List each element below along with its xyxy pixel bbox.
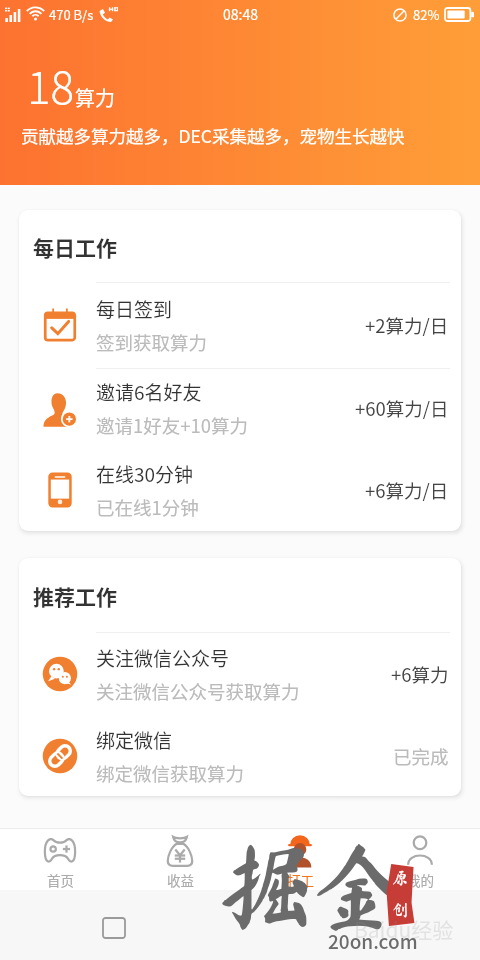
staticText: 绑定微信获取算力 xyxy=(96,760,245,787)
staticText: 邀请1好友+10算力 xyxy=(96,412,249,439)
staticText: 打工 xyxy=(287,870,314,890)
staticText: 推荐工作 xyxy=(33,581,117,611)
staticText: +6算力 xyxy=(391,661,449,688)
staticText: 首页 xyxy=(47,870,74,890)
button[interactable]: 收益 xyxy=(120,828,240,890)
staticText: 18 xyxy=(27,53,75,117)
staticText: 收益 xyxy=(167,870,194,890)
staticText: 每日工作 xyxy=(33,232,117,262)
staticText: 已完成 xyxy=(393,743,449,770)
button[interactable]: Home xyxy=(103,918,125,938)
staticText: +60算力/日 xyxy=(355,395,449,422)
staticText: 贡献越多算力越多，DEC采集越多，宠物生长越快 xyxy=(21,123,405,148)
staticText: 82% xyxy=(413,5,440,24)
staticText: 20on.com xyxy=(328,927,418,955)
staticText: 创 xyxy=(392,902,409,918)
button[interactable]: 邀请6名好友 xyxy=(19,368,461,449)
staticText: 每日签到 xyxy=(96,295,173,323)
staticText: 已在线1分钟 xyxy=(96,494,199,521)
staticText: 08:48 xyxy=(223,4,258,24)
button[interactable]: 关注微信公众号 xyxy=(19,632,461,716)
button[interactable]: 在线30分钟 xyxy=(19,449,461,531)
staticText: Baidu经验 xyxy=(354,914,454,944)
button[interactable]: 绑定微信 xyxy=(19,716,461,796)
staticText: 470 B/s xyxy=(49,5,94,24)
staticText: 算力 xyxy=(75,83,115,112)
staticText: +6算力/日 xyxy=(365,477,449,504)
staticText: 掘金 xyxy=(216,836,413,934)
button[interactable]: 首页 xyxy=(0,828,120,890)
staticText: 签到获取算力 xyxy=(96,329,208,356)
button[interactable]: 每日签到 xyxy=(19,282,461,368)
staticText: 在线30分钟 xyxy=(96,460,194,488)
staticText: 关注微信公众号 xyxy=(96,644,230,672)
staticText: 原 xyxy=(392,870,409,886)
staticText: 我的 xyxy=(407,870,434,890)
staticText: 邀请6名好友 xyxy=(96,378,202,406)
button[interactable]: 打工 xyxy=(240,828,360,890)
staticText: 关注微信公众号获取算力 xyxy=(96,678,300,705)
button[interactable]: 我的 xyxy=(360,828,480,890)
staticText: 绑定微信 xyxy=(96,726,173,754)
staticText: +2算力/日 xyxy=(365,312,449,339)
